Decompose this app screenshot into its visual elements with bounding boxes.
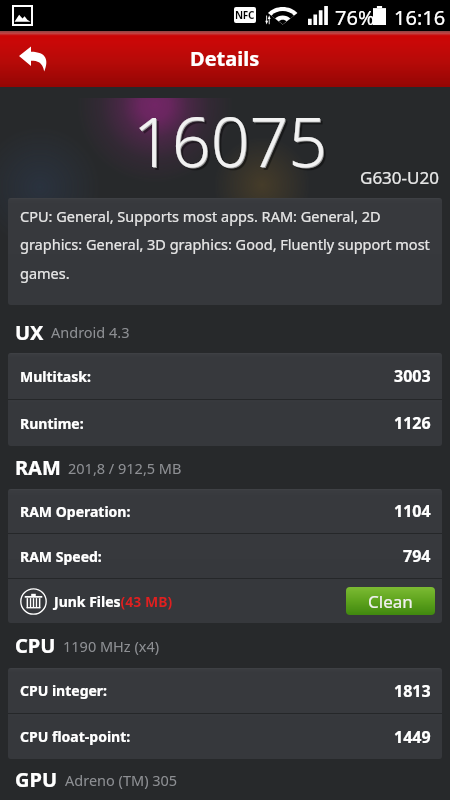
- staticText: UX: [15, 319, 44, 346]
- staticText: NFC: [235, 8, 255, 22]
- staticText: Adreno (TM) 305: [65, 770, 178, 790]
- staticText: 1104: [394, 500, 431, 522]
- staticText: 1813: [394, 680, 431, 702]
- staticText: 1126: [394, 412, 431, 434]
- staticText: 1449: [394, 726, 431, 748]
- button[interactable]: CPU integer:: [8, 668, 442, 713]
- staticText: 16:16: [394, 4, 446, 31]
- staticText: GPU: [15, 766, 58, 793]
- staticText: 16075: [133, 94, 328, 187]
- staticText: CPU: General, Supports most apps. RAM: G…: [20, 206, 432, 284]
- staticText: 16075: [136, 97, 331, 190]
- button[interactable]: RAM Operation:: [8, 489, 442, 533]
- staticText: 3003: [394, 365, 431, 387]
- staticText: CPU float-point:: [20, 727, 131, 746]
- staticText: 76%: [335, 4, 375, 31]
- button[interactable]: RAM Speed:: [8, 534, 442, 578]
- button[interactable]: CPU: General, Supports most apps. RAM: G…: [8, 198, 442, 305]
- staticText: 201,8 / 912,5 MB: [68, 458, 182, 478]
- staticText: Multitask:: [20, 367, 91, 386]
- staticText: CPU: [15, 632, 56, 659]
- button[interactable]: Runtime:: [8, 400, 442, 446]
- button[interactable]: Junk files: [20, 588, 47, 615]
- staticText: Runtime:: [20, 414, 84, 433]
- staticText: RAM Speed:: [20, 547, 102, 566]
- staticText: Junk Files(43 MB): [54, 592, 173, 611]
- staticText: G630-U20: [360, 166, 439, 189]
- staticText: CPU integer:: [20, 681, 108, 700]
- staticText: 16075: [134, 95, 329, 188]
- staticText: 794: [403, 545, 431, 567]
- staticText: 1190 MHz (x4): [63, 636, 160, 656]
- staticText: Clean: [368, 590, 413, 613]
- staticText: RAM Operation:: [20, 502, 131, 521]
- button[interactable]: Back: [14, 39, 54, 79]
- button[interactable]: Multitask:: [8, 353, 442, 399]
- button[interactable]: CPU float-point:: [8, 714, 442, 759]
- staticText: Details: [190, 45, 260, 72]
- staticText: RAM: [15, 454, 61, 481]
- button[interactable]: Clean: [346, 587, 435, 615]
- staticText: Android 4.3: [51, 322, 130, 342]
